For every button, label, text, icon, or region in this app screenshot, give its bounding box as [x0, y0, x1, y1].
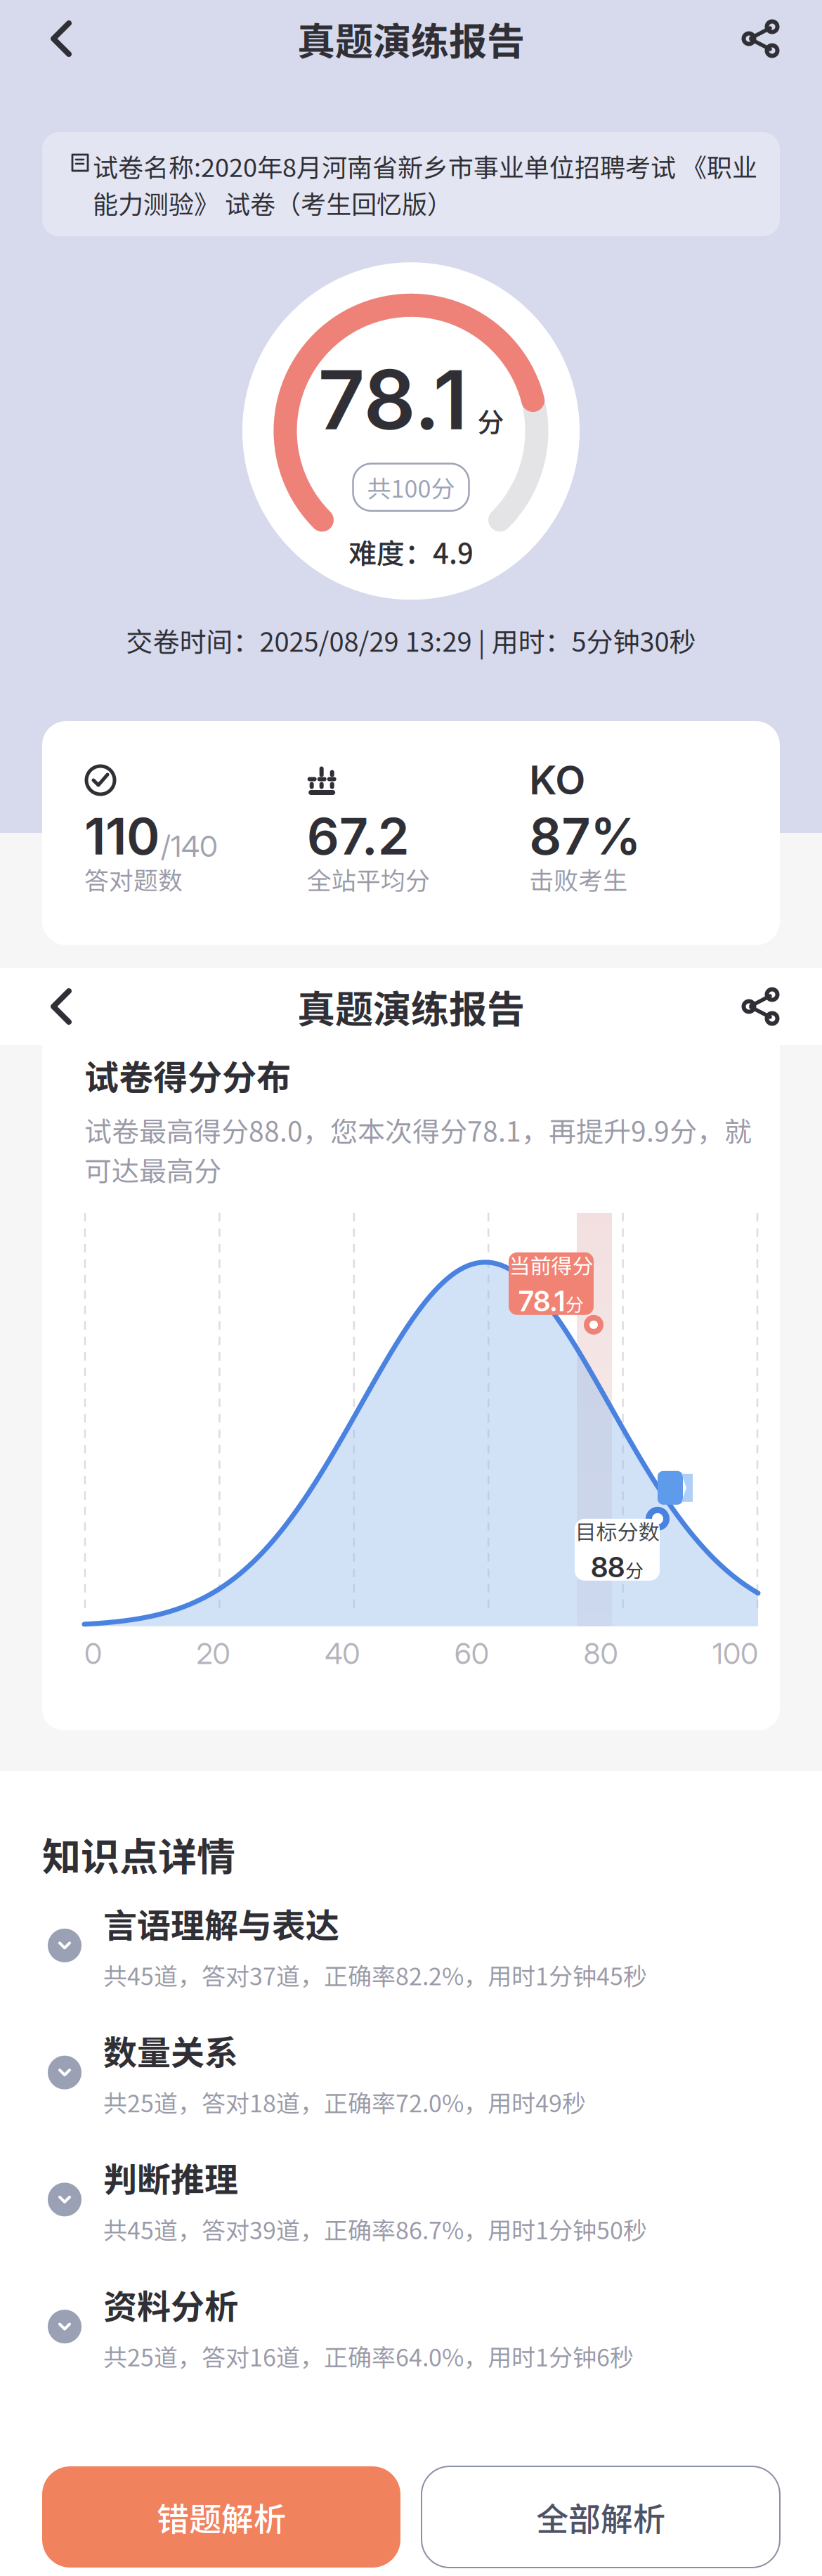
staticText: 110	[84, 805, 159, 867]
button[interactable]: 言语理解与表达	[0, 1882, 822, 2009]
staticText: 数量关系	[103, 2026, 238, 2075]
staticText: 共25道，答对16道，正确率64.0%，用时1分钟6秒	[103, 2339, 634, 2373]
staticText: 60	[454, 1636, 489, 1671]
staticText: 80	[583, 1636, 618, 1671]
button[interactable]: 资料分析	[0, 2263, 822, 2390]
staticText: 试卷最高得分88.0，您本次得分78.1，再提升9.9分，就可达最高分	[84, 1110, 752, 1189]
button[interactable]: 数量关系	[0, 2009, 822, 2136]
staticText: 试卷名称:2020年8月河南省新乡市事业单位招聘考试 《职业能力测验》 试卷（考…	[93, 148, 757, 221]
staticText: 真题演练报告	[297, 979, 525, 1034]
staticText: 分	[566, 1290, 584, 1317]
button[interactable]: 全部解析	[422, 2466, 780, 2568]
button[interactable]: Share	[722, 968, 800, 1045]
staticText: 共45道，答对39道，正确率86.7%，用时1分钟50秒	[103, 2212, 647, 2246]
staticText: 交卷时间：2025/08/29 13:29 | 用时：5分钟30秒	[126, 621, 696, 659]
staticText: 知识点详情	[42, 1826, 235, 1882]
staticText: /140	[161, 828, 218, 864]
staticText: 100	[712, 1636, 758, 1671]
staticText: 共25道，答对18道，正确率72.0%，用时49秒	[103, 2085, 586, 2119]
button[interactable]: 判断推理	[0, 2136, 822, 2263]
staticText: 40	[325, 1636, 360, 1671]
staticText: 78.1	[518, 1284, 565, 1318]
staticText: 共45道，答对37道，正确率82.2%，用时1分钟45秒	[103, 1957, 647, 1992]
staticText: KO	[529, 756, 585, 804]
staticText: 判断推理	[103, 2153, 238, 2202]
staticText: 答对题数	[84, 861, 183, 897]
staticText: 全站平均分	[307, 861, 430, 897]
staticText: 真题演练报告	[297, 11, 525, 66]
staticText: 言语理解与表达	[103, 1899, 339, 1948]
staticText: 试卷得分分布	[84, 1050, 291, 1100]
button[interactable]: 错题解析	[42, 2466, 400, 2568]
staticText: 击败考生	[529, 861, 628, 897]
staticText: 78.1	[318, 350, 468, 449]
staticText: 错题解析	[157, 2494, 286, 2540]
staticText: 难度：4.9	[348, 531, 474, 572]
staticText: 0	[84, 1636, 102, 1671]
staticText: 共100分	[367, 470, 455, 505]
staticText: 当前得分	[509, 1249, 593, 1280]
staticText: 67.2	[307, 805, 409, 867]
staticText: 全部解析	[536, 2494, 665, 2540]
staticText: 分	[625, 1556, 644, 1583]
button[interactable]: Back	[22, 968, 100, 1045]
staticText: 88	[591, 1550, 625, 1584]
staticText: 87%	[529, 805, 641, 867]
button[interactable]: Share	[722, 0, 800, 77]
staticText: 20	[196, 1636, 230, 1671]
staticText: 分	[477, 401, 504, 440]
button[interactable]: Back	[22, 0, 100, 77]
staticText: 目标分数	[575, 1515, 659, 1546]
staticText: 资料分析	[103, 2280, 238, 2329]
